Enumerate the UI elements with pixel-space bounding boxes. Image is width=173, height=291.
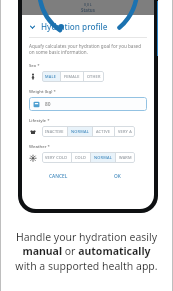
- staticText: Weather *: [29, 143, 50, 149]
- other: Weather: [29, 154, 37, 162]
- staticText: NORMAL: [94, 155, 112, 160]
- staticText: Status: [81, 7, 95, 13]
- button[interactable]: VERY A: [115, 126, 135, 137]
- staticText: Handle your hydration easily manual or a…: [12, 230, 161, 273]
- button[interactable]: Weight: [29, 97, 147, 111]
- staticText: WARM: [119, 155, 132, 160]
- button[interactable]: Hydration profile: [29, 20, 147, 33]
- staticText: COLD: [75, 155, 87, 160]
- staticText: 80: [45, 101, 51, 108]
- button[interactable]: OTHER: [84, 71, 104, 82]
- staticText: ACTIVE: [96, 129, 111, 134]
- button[interactable]: MALE: [42, 71, 60, 82]
- other: Weight: [33, 101, 40, 108]
- button[interactable]: COLD: [72, 152, 90, 163]
- staticText: Aquafy calculates your hydration goal fo…: [29, 43, 147, 56]
- staticText: Hydration profile: [41, 21, 108, 32]
- button[interactable]: NORMAL: [68, 126, 92, 137]
- staticText: MALE: [45, 74, 57, 79]
- staticText: VERY A: [118, 129, 132, 134]
- staticText: 0,0 L: [84, 2, 92, 7]
- button[interactable]: FEMALE: [61, 71, 83, 82]
- staticText: CANCEL: [49, 173, 68, 180]
- other: Lifestyle: [29, 128, 37, 136]
- button[interactable]: INACTIVE: [42, 126, 67, 137]
- button[interactable]: CANCEL: [29, 171, 88, 182]
- button[interactable]: WARM: [116, 152, 135, 163]
- staticText: OTHER: [87, 74, 101, 79]
- staticText: VERY COLD: [45, 155, 68, 160]
- staticText: OK: [114, 173, 121, 180]
- other: Sex: [29, 73, 37, 81]
- staticText: NORMAL: [71, 129, 89, 134]
- staticText: Lifestyle *: [29, 117, 50, 123]
- button[interactable]: ACTIVE: [93, 126, 114, 137]
- button[interactable]: OK: [88, 171, 147, 182]
- staticText: Weight (kg) *: [29, 88, 56, 94]
- button[interactable]: VERY COLD: [42, 152, 71, 163]
- staticText: Sex *: [29, 62, 40, 68]
- staticText: FEMALE: [64, 74, 80, 79]
- button[interactable]: NORMAL: [91, 152, 115, 163]
- staticText: INACTIVE: [45, 129, 64, 134]
